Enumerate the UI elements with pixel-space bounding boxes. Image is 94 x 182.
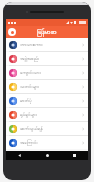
button[interactable]: ဆက်သွယ်ရန်: [6, 122, 88, 135]
button[interactable]: ရုပ်ရှင်များ: [6, 108, 88, 121]
staticText: ဘာသာစကား: [20, 41, 43, 48]
button[interactable]: သတင်းများ: [6, 80, 88, 93]
button[interactable]: Profile: [8, 28, 16, 36]
staticText: ဓာတ်ပုံ: [20, 97, 32, 104]
button[interactable]: ဓာတ်ပုံ: [6, 94, 88, 107]
button[interactable]: Home: [43, 151, 52, 160]
staticText: ရုပ်ရှင်များ: [20, 111, 37, 118]
staticText: ဆက်သွယ်ရန်: [20, 125, 43, 132]
button[interactable]: အဖွဲ့အစည်း: [6, 52, 88, 65]
button[interactable]: Back: [15, 151, 24, 160]
staticText: မြန်မာစာ: [37, 27, 57, 38]
button[interactable]: Recent apps: [70, 151, 79, 160]
button[interactable]: ကျောင်းသား: [6, 66, 88, 79]
button[interactable]: အကြောင်း: [6, 136, 88, 149]
staticText: အဖွဲ့အစည်း: [20, 55, 40, 62]
staticText: ကျောင်းသား: [20, 69, 41, 76]
staticText: အကြောင်း: [20, 139, 38, 146]
button[interactable]: ဘာသာစကား: [6, 38, 88, 51]
staticText: သတင်းများ: [20, 83, 40, 90]
